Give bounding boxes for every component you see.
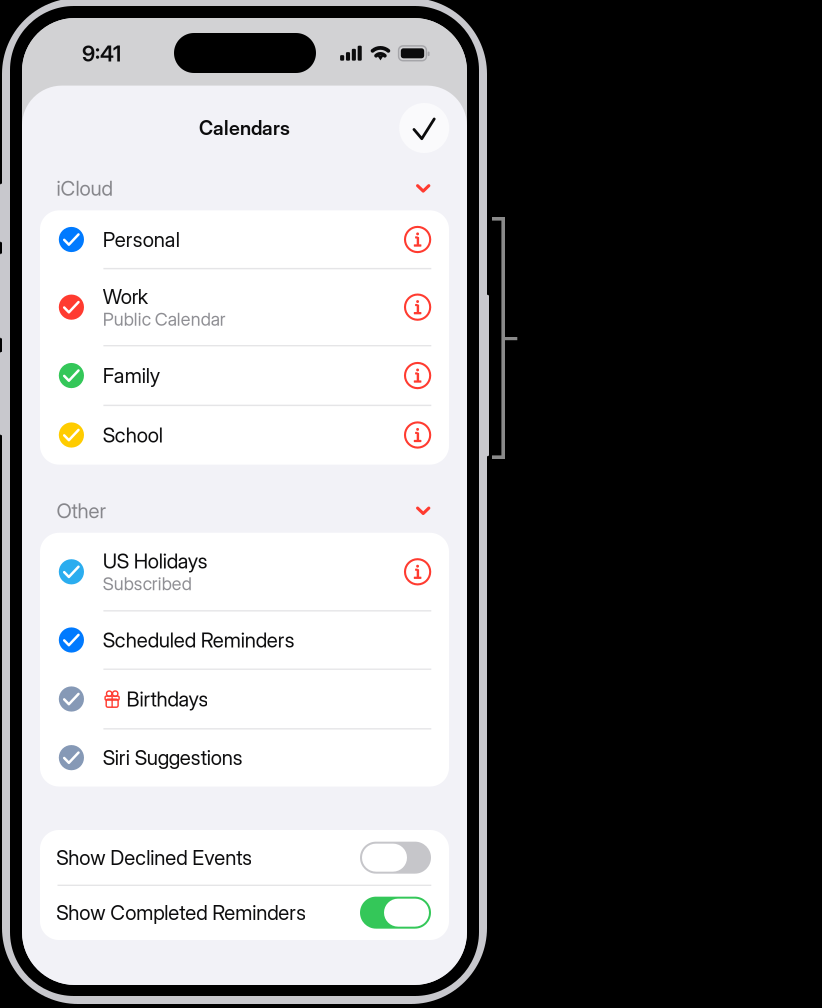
staticText: Public Calendar	[103, 308, 226, 330]
button[interactable]: Done	[399, 103, 449, 153]
button[interactable]: iCloud	[40, 166, 449, 210]
staticText: Other	[57, 498, 107, 523]
staticText: 9:41	[82, 40, 121, 67]
button[interactable]: Personal	[40, 210, 449, 269]
staticText: Scheduled Reminders	[103, 628, 295, 652]
button[interactable]: Other	[40, 489, 449, 533]
staticText: Work	[103, 284, 148, 309]
button[interactable]: Show Declined Events	[40, 830, 449, 885]
staticText: iCloud	[57, 176, 113, 201]
staticText: Show Completed Reminders	[56, 900, 306, 925]
button[interactable]: Siri Suggestions	[40, 729, 449, 786]
button[interactable]: School	[40, 405, 449, 465]
staticText: Subscribed	[103, 573, 192, 595]
staticText: Birthdays	[126, 687, 208, 711]
staticText: Siri Suggestions	[103, 745, 243, 770]
staticText: Personal	[103, 227, 180, 252]
button[interactable]: Family	[40, 346, 449, 405]
button[interactable]: Birthdays	[40, 669, 449, 729]
staticText: Show Declined Events	[56, 845, 252, 870]
button[interactable]: Show Completed Reminders	[40, 885, 449, 940]
staticText: US Holidays	[103, 549, 208, 573]
button[interactable]: Work	[40, 269, 449, 346]
button[interactable]: Scheduled Reminders	[40, 611, 449, 669]
staticText: School	[103, 423, 163, 447]
button[interactable]: US Holidays	[40, 533, 449, 611]
staticText: Family	[103, 363, 160, 388]
staticText: Calendars	[199, 116, 290, 140]
